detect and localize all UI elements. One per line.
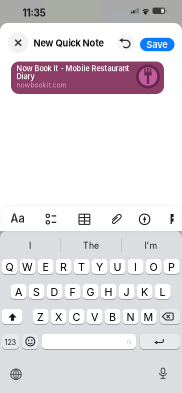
- staticText: Z: [37, 311, 44, 324]
- staticText: M: [144, 311, 154, 324]
- staticText: B: [109, 311, 116, 324]
- staticText: Q: [6, 261, 14, 274]
- staticText: I: [29, 240, 31, 251]
- staticText: J: [124, 286, 130, 299]
- staticText: nowbookit.com: [16, 81, 66, 89]
- staticText: D: [51, 286, 59, 299]
- staticText: rs: [126, 338, 131, 346]
- staticText: U: [114, 261, 122, 274]
- staticText: H: [105, 286, 113, 299]
- staticText: L: [160, 286, 166, 299]
- staticText: E: [43, 261, 49, 274]
- staticText: I'm: [144, 240, 157, 251]
- staticText: W: [22, 261, 33, 274]
- staticText: C: [73, 311, 81, 324]
- staticText: Save: [146, 39, 168, 50]
- staticText: G: [87, 286, 95, 299]
- staticText: X: [55, 311, 62, 324]
- staticText: V: [91, 311, 98, 324]
- staticText: K: [141, 286, 148, 299]
- staticText: New Quick Note: [33, 37, 104, 49]
- staticText: O: [150, 261, 158, 274]
- staticText: R: [60, 261, 67, 274]
- staticText: I: [134, 261, 137, 274]
- staticText: P: [168, 261, 175, 274]
- staticText: 11:35: [22, 7, 45, 19]
- staticText: A: [15, 286, 22, 299]
- staticText: Y: [96, 261, 103, 274]
- staticText: Now Book It - Mobile Restaurant: [16, 64, 129, 73]
- staticText: The: [83, 240, 99, 251]
- staticText: 123: [4, 338, 16, 347]
- staticText: S: [33, 286, 40, 299]
- staticText: T: [78, 261, 85, 274]
- staticText: Aa: [10, 212, 24, 225]
- staticText: Diary: [16, 72, 34, 81]
- staticText: N: [127, 311, 135, 324]
- staticText: F: [70, 286, 76, 299]
